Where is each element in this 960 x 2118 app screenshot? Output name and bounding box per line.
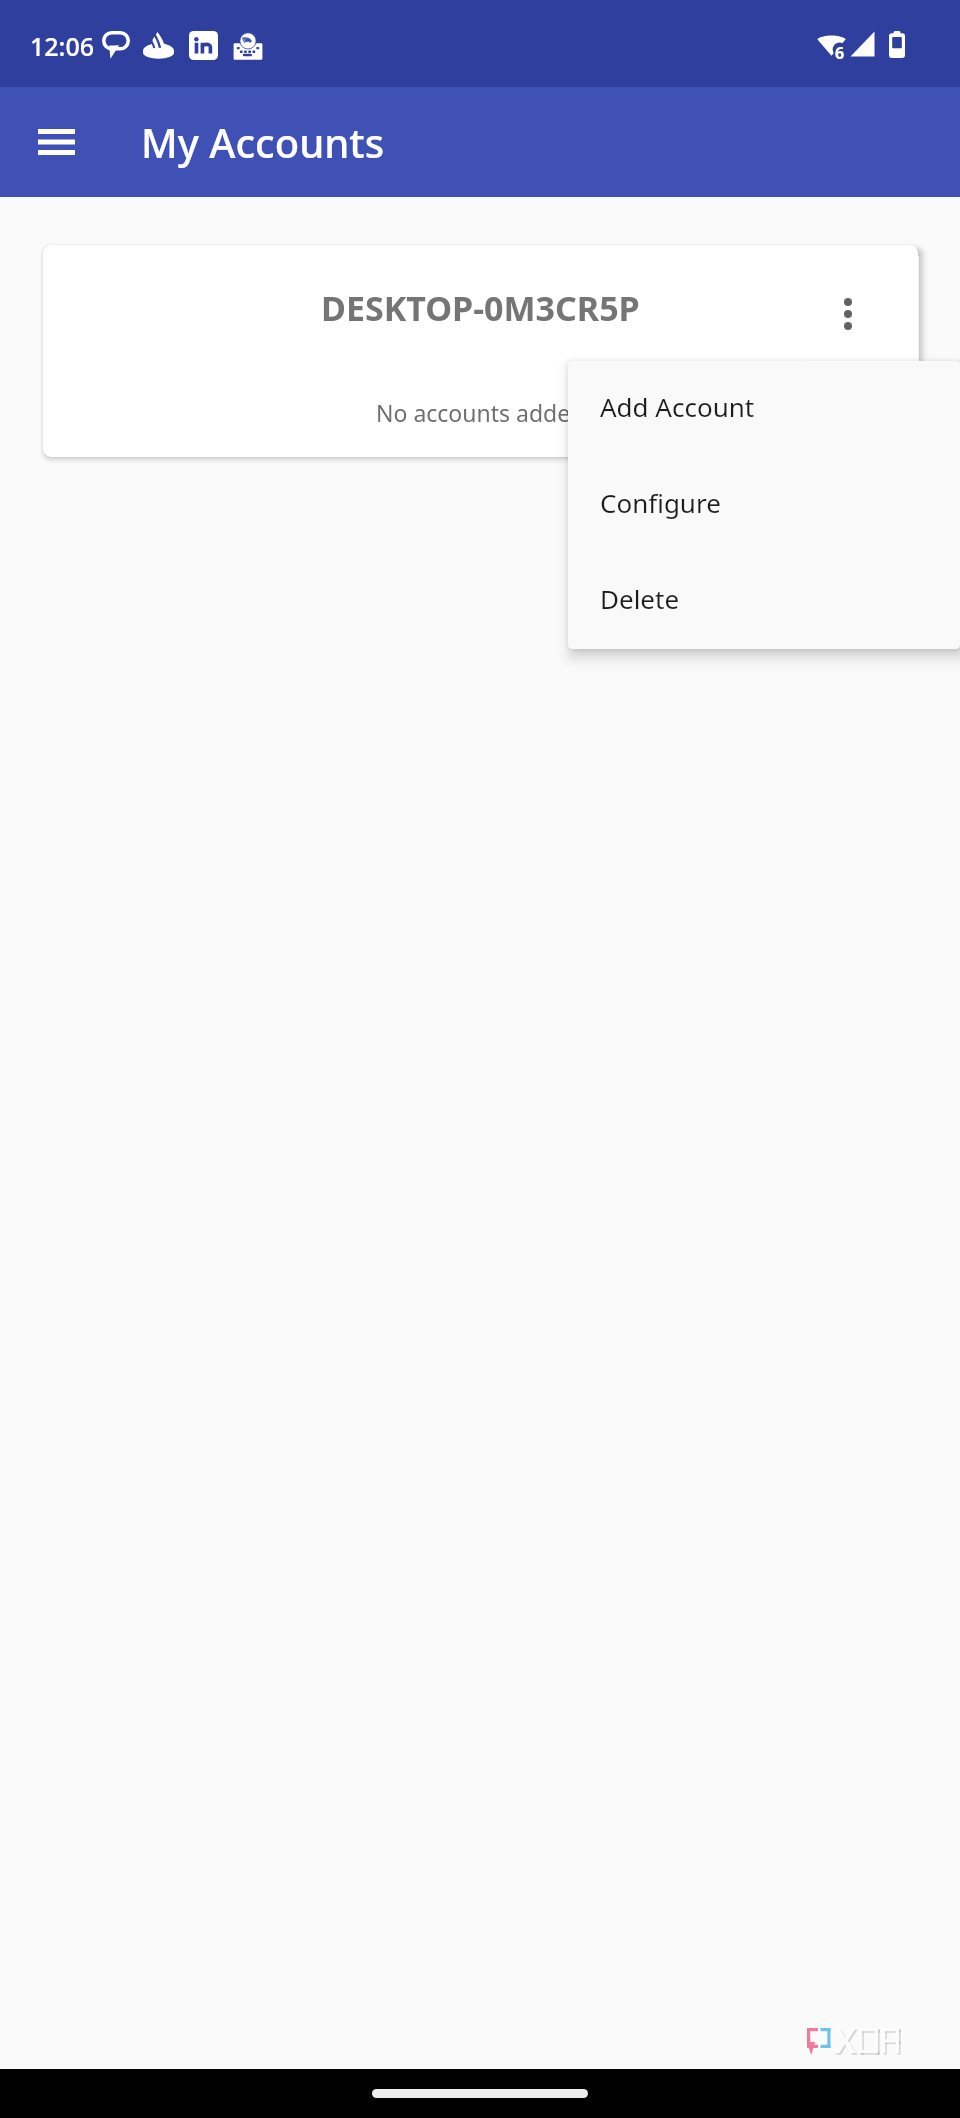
staticText: 12:06	[30, 29, 95, 63]
button[interactable]: Add Account	[568, 361, 960, 457]
button[interactable]: More options	[810, 276, 886, 352]
button[interactable]: Delete	[568, 553, 960, 649]
staticText: Add Account	[600, 389, 755, 424]
button[interactable]: DESKTOP-0M3CR5P	[43, 245, 918, 457]
staticText: Delete	[600, 581, 680, 616]
staticText: 6	[835, 42, 845, 64]
staticText: DESKTOP-0M3CR5P	[321, 285, 640, 331]
staticText: My Accounts	[141, 115, 385, 169]
button[interactable]: Configure	[568, 457, 960, 553]
button[interactable]: Open navigation menu	[19, 87, 93, 197]
staticText: No accounts added	[376, 397, 585, 428]
staticText: Configure	[600, 485, 721, 520]
